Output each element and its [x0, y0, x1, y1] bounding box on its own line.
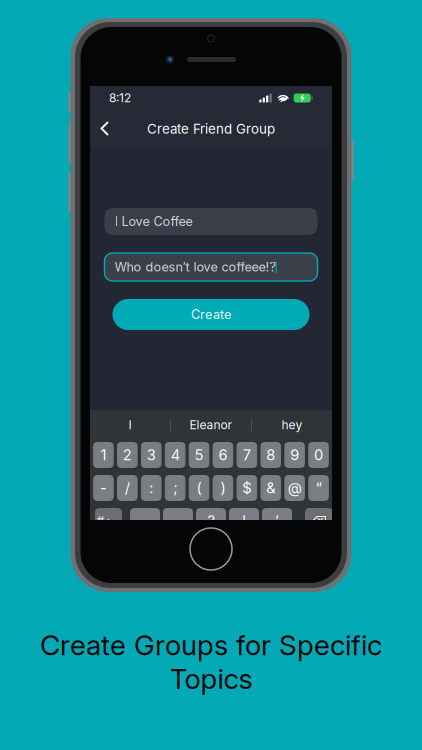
staticText: @ — [288, 479, 302, 497]
staticText: ) — [220, 479, 225, 497]
button[interactable]: Back — [90, 114, 120, 144]
staticText: ; — [173, 479, 177, 497]
staticText: 4 — [171, 446, 180, 464]
staticText: “ — [316, 479, 322, 497]
staticText: . — [143, 512, 147, 530]
staticText: 6 — [218, 446, 227, 464]
staticText: Create — [40, 628, 134, 662]
staticText: ! — [242, 512, 246, 530]
staticText: 1 — [100, 446, 106, 464]
staticText: 8:12 — [109, 91, 131, 105]
staticText: ⌫ — [311, 513, 327, 529]
staticText: 9 — [290, 446, 299, 464]
staticText: : — [149, 479, 153, 497]
staticText: I — [128, 418, 131, 432]
staticText: ? — [207, 512, 214, 530]
staticText: 2 — [123, 446, 132, 464]
staticText: $ — [242, 479, 251, 497]
staticText: - — [100, 479, 107, 497]
staticText: hey — [281, 418, 302, 432]
staticText: Topics — [169, 662, 252, 696]
staticText: , — [176, 512, 180, 530]
button[interactable]: I — [90, 411, 170, 439]
button[interactable]: hey — [252, 411, 332, 439]
staticText: Groups for — [134, 628, 279, 662]
staticText: Create Friend Group — [147, 121, 275, 137]
staticText: Eleanor — [189, 418, 232, 432]
staticText: ’ — [275, 512, 279, 530]
staticText: 8 — [266, 446, 275, 464]
staticText: I Love Coffee — [114, 214, 192, 229]
staticText: Specific — [279, 628, 382, 662]
staticText: Who doesn’t love coffeee!? — [114, 259, 275, 275]
staticText: 7 — [243, 446, 251, 464]
staticText: ( — [197, 479, 202, 497]
button[interactable]: Create — [112, 299, 309, 330]
staticText: Create — [191, 307, 231, 322]
button[interactable]: Eleanor — [171, 411, 251, 439]
staticText: 5 — [195, 446, 204, 464]
staticText: 3 — [147, 446, 156, 464]
staticText: & — [266, 479, 275, 497]
staticText: #+= — [96, 514, 120, 528]
staticText: 0 — [314, 446, 323, 464]
staticText: / — [125, 479, 130, 497]
